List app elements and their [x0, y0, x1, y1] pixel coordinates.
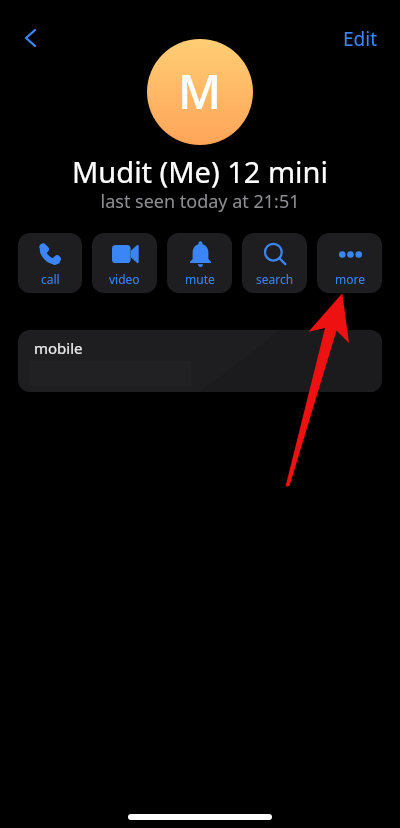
staticText: search: [256, 271, 294, 287]
button[interactable]: mute: [167, 233, 232, 293]
staticText: Edit: [343, 26, 378, 52]
button[interactable]: mobile: [18, 330, 382, 392]
staticText: more: [335, 271, 365, 287]
staticText: call: [41, 271, 60, 287]
staticText: Mudit (Me) 12 mini: [0, 152, 400, 191]
staticText: mute: [185, 271, 215, 287]
staticText: mobile: [34, 338, 83, 358]
button[interactable]: search: [242, 233, 307, 293]
staticText: last seen today at 21:51: [0, 189, 400, 214]
button[interactable]: Back: [8, 16, 52, 60]
staticText: video: [109, 271, 140, 287]
button[interactable]: call: [18, 233, 82, 293]
staticText: M: [178, 59, 222, 123]
button[interactable]: video: [92, 233, 157, 293]
button[interactable]: more: [317, 233, 382, 293]
button[interactable]: Edit: [334, 18, 387, 60]
